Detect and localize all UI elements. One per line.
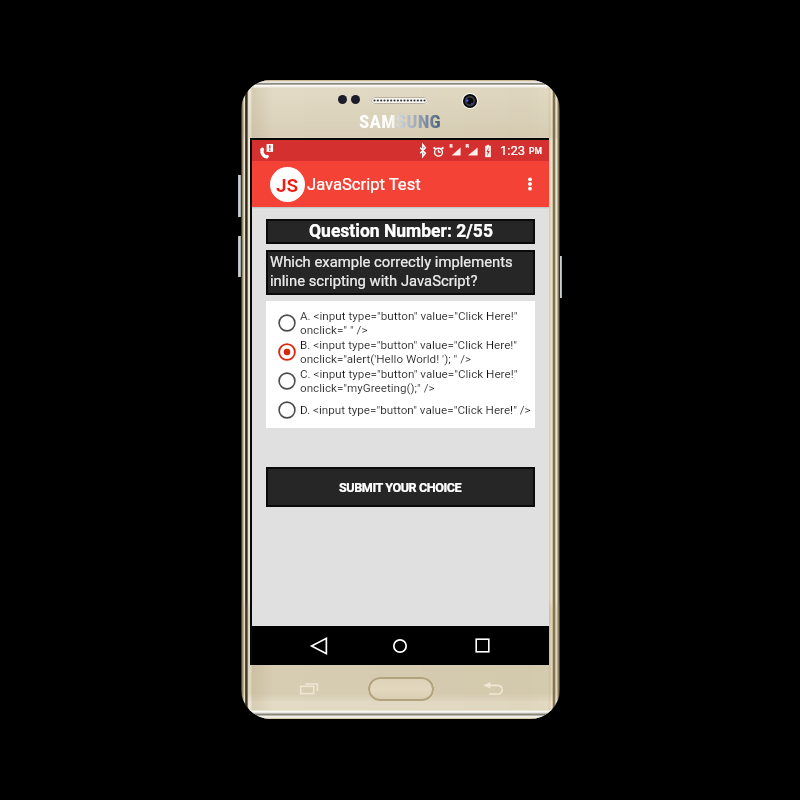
button[interactable]: A. <input type="button" value="Click Her… [266,308,535,337]
staticText: Question Number: 2/55 [309,221,493,242]
button[interactable]: Home [381,626,419,665]
button[interactable]: Recent apps [463,626,501,665]
button[interactable]: Recent apps [299,681,320,695]
staticText: Which example correctly implements inlin… [270,253,535,290]
button[interactable]: Home [368,677,434,701]
button[interactable]: Volume down [238,236,241,277]
staticText: C. <input type="button" value="Click Her… [300,367,518,395]
staticText: SUBMIT YOUR CHOICE [339,480,462,495]
staticText: SAMSUNG [359,110,441,130]
button[interactable]: Volume up [238,175,241,217]
staticText: PM [529,146,542,156]
staticText: A. <input type="button" value="Click Her… [300,309,518,337]
staticText: 1:23 [500,143,526,158]
button[interactable]: More options [512,166,548,202]
button[interactable]: SUBMIT YOUR CHOICE [266,467,535,507]
staticText: B. <input type="button" value="Click Her… [300,338,518,366]
staticText: JS [276,174,299,196]
button[interactable]: Power [559,256,562,298]
button[interactable]: Back [300,626,338,665]
button[interactable]: C. <input type="button" value="Click Her… [266,366,535,395]
button[interactable]: B. <input type="button" value="Click Her… [266,337,535,366]
staticText: D. <input type="button" value="Click Her… [300,403,531,417]
button[interactable]: Back [482,682,504,696]
staticText: JavaScript Test [307,175,421,194]
button[interactable]: D. <input type="button" value="Click Her… [266,395,535,424]
